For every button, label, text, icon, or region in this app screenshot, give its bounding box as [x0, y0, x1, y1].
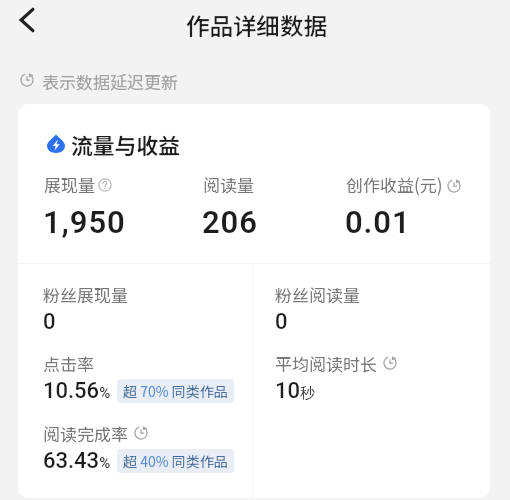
staticText: 流量与收益 — [71, 129, 180, 161]
staticText: 206 — [202, 204, 258, 240]
staticText: 粉丝阅读量 — [275, 282, 360, 307]
button[interactable]: 返回 — [6, 0, 48, 41]
staticText: 粉丝展现量 — [43, 282, 128, 307]
staticText: 平均阅读时长 — [275, 351, 377, 376]
staticText: 点击率 — [43, 351, 94, 376]
staticText: 0 — [43, 309, 56, 335]
staticText: 作品详细数据 — [186, 8, 327, 42]
staticText: 0 — [275, 309, 288, 335]
staticText: 超 70% 同类作品 — [123, 381, 228, 401]
staticText: 1,950 — [43, 204, 126, 240]
staticText: 0.01 — [345, 204, 411, 240]
staticText: 创作收益(元) — [346, 172, 443, 197]
staticText: 阅读完成率 — [43, 421, 128, 446]
staticText: 10.56% — [43, 378, 111, 404]
staticText: 阅读量 — [203, 172, 254, 197]
staticText: 超 40% 同类作品 — [123, 451, 228, 471]
staticText: 10秒 — [275, 378, 316, 404]
staticText: 63.43% — [43, 448, 111, 474]
staticText: 展现量 — [44, 172, 95, 197]
staticText: 表示数据延迟更新 — [42, 69, 178, 94]
